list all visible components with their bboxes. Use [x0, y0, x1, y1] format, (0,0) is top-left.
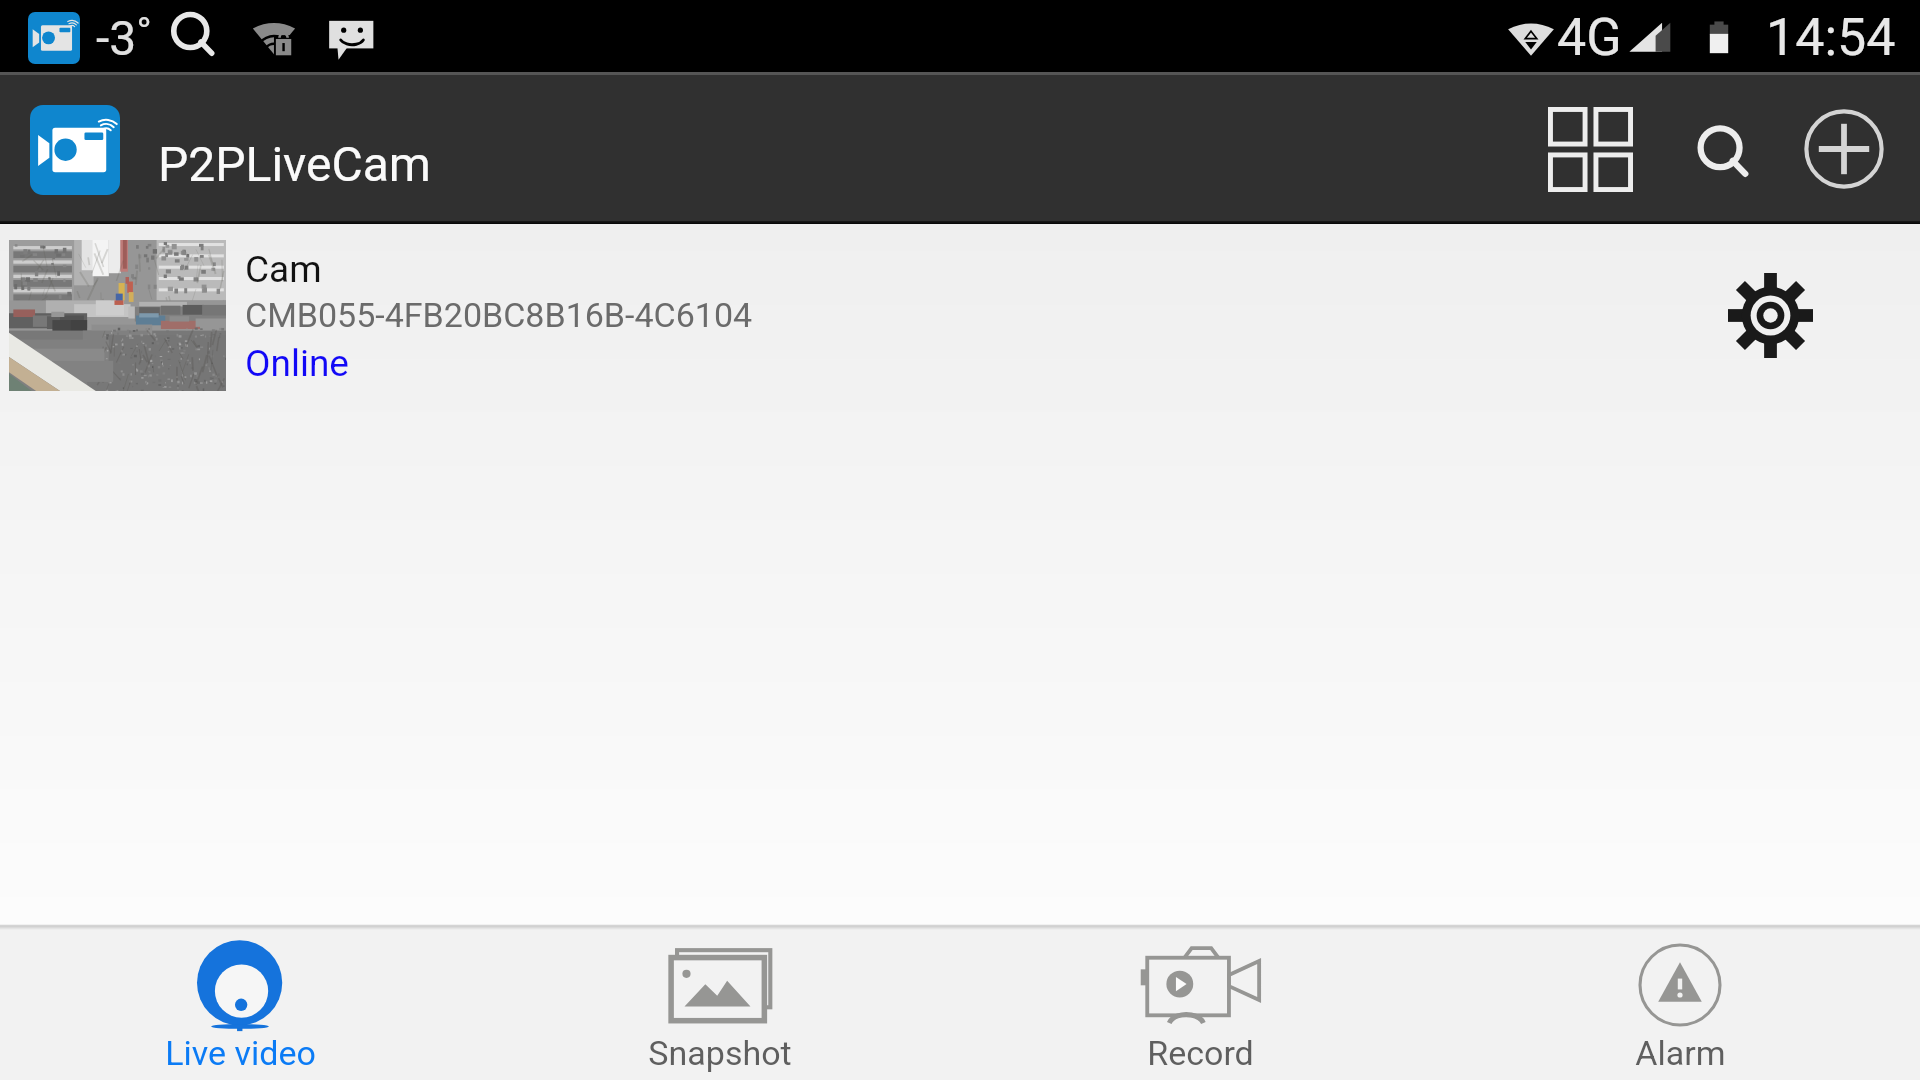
button[interactable]: Live video — [0, 924, 480, 1080]
button[interactable]: Grid view — [1530, 89, 1650, 209]
button[interactable]: Record — [960, 924, 1440, 1080]
button[interactable]: Camera settings — [1710, 255, 1830, 375]
staticText: Snapshot — [648, 1033, 792, 1073]
staticText: 4G — [1557, 7, 1622, 68]
staticText: Live video — [165, 1033, 316, 1073]
staticText: -3˚ — [96, 10, 153, 66]
button[interactable]: Snapshot — [480, 924, 960, 1080]
staticText: Alarm — [1635, 1033, 1726, 1073]
staticText: P2PLiveCam — [158, 136, 431, 192]
staticText: Record — [1147, 1033, 1254, 1073]
button[interactable]: Alarm — [1440, 924, 1920, 1080]
staticText: Cam — [245, 248, 322, 291]
button[interactable]: Search — [1668, 96, 1788, 216]
button[interactable]: Add camera — [1784, 89, 1904, 209]
button[interactable]: Cam — [0, 224, 1920, 391]
staticText: Online — [245, 342, 349, 385]
staticText: 14:54 — [1766, 7, 1896, 68]
staticText: CMB055-4FB20BC8B16B-4C6104 — [245, 295, 753, 335]
